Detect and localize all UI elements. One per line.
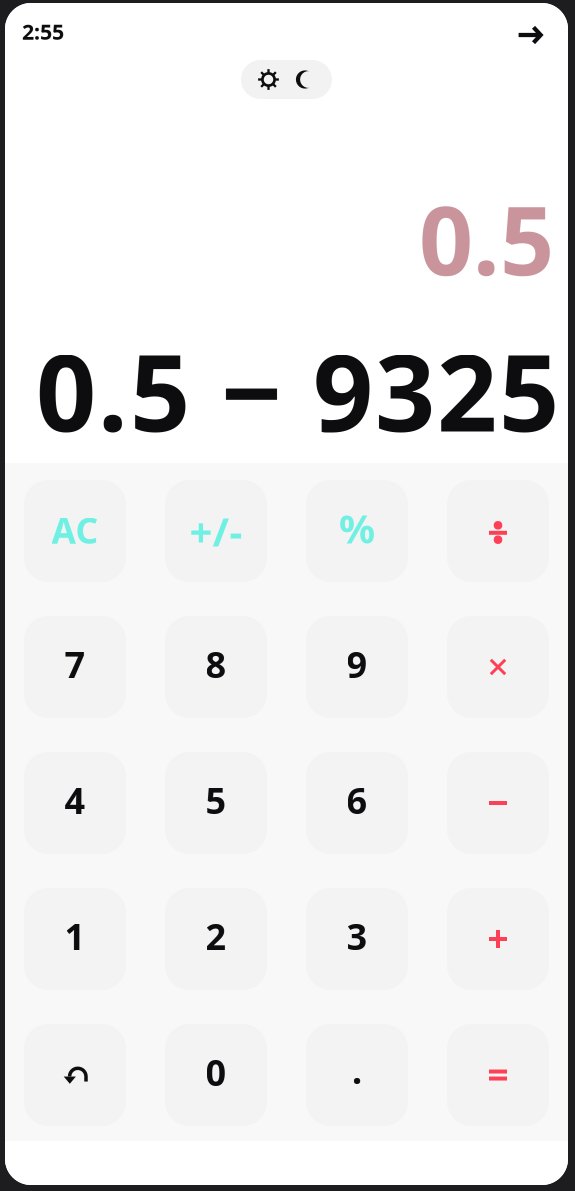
staticText: 7 xyxy=(64,639,85,688)
staticText: 3 xyxy=(346,911,367,960)
button[interactable]: Continue xyxy=(508,13,552,57)
button[interactable]: % xyxy=(306,480,408,582)
button[interactable]: Multiply xyxy=(447,616,549,718)
staticText: . xyxy=(352,1045,362,1094)
button[interactable]: 0 xyxy=(165,1024,267,1126)
button[interactable]: 6 xyxy=(306,752,408,854)
staticText: +/- xyxy=(189,504,242,558)
staticText: % xyxy=(339,501,375,555)
button[interactable]: 5 xyxy=(165,752,267,854)
button[interactable]: 8 xyxy=(165,616,267,718)
staticText: 6 xyxy=(346,775,367,824)
button[interactable]: 9 xyxy=(306,616,408,718)
button[interactable]: Subtract xyxy=(447,752,549,854)
button[interactable]: Undo xyxy=(24,1024,126,1126)
staticText: AC xyxy=(51,506,98,554)
button[interactable]: Toggle light or dark appearance xyxy=(241,60,332,99)
button[interactable]: 4 xyxy=(24,752,126,854)
button[interactable]: Divide xyxy=(447,480,549,582)
staticText: 2 xyxy=(205,911,226,960)
button[interactable]: 7 xyxy=(24,616,126,718)
staticText: 0.5 xyxy=(419,174,554,303)
button[interactable]: AC xyxy=(24,480,126,582)
staticText: 9 xyxy=(346,639,367,688)
staticText: 1 xyxy=(64,911,85,960)
staticText: 0 xyxy=(205,1047,226,1096)
staticText: 4 xyxy=(64,775,85,824)
button[interactable]: . xyxy=(306,1024,408,1126)
button[interactable]: 3 xyxy=(306,888,408,990)
button[interactable]: Equals xyxy=(447,1024,549,1126)
button[interactable]: +/- xyxy=(165,480,267,582)
staticText: 5 xyxy=(205,775,226,824)
button[interactable]: 1 xyxy=(24,888,126,990)
staticText: 0.5 − 9325 xyxy=(36,319,559,462)
button[interactable]: 2 xyxy=(165,888,267,990)
staticText: 8 xyxy=(205,639,226,688)
button[interactable]: Add xyxy=(447,888,549,990)
staticText: 2:55 xyxy=(22,17,64,46)
